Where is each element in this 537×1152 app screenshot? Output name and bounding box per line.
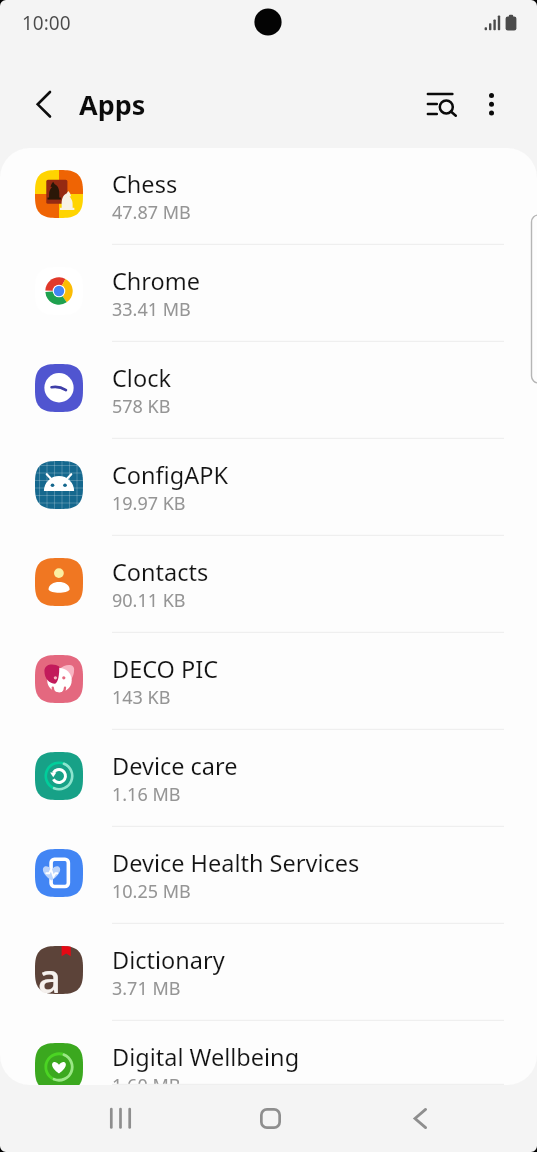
staticText: DECO PIC xyxy=(112,653,219,685)
staticText: 10.25 MB xyxy=(112,879,191,904)
staticText: 3.71 MB xyxy=(112,976,181,1001)
button[interactable]: Clock xyxy=(0,342,537,439)
staticText: 10:00 xyxy=(22,10,71,36)
button[interactable]: a xyxy=(0,924,537,1021)
staticText: 1.16 MB xyxy=(112,782,181,807)
button[interactable]: Digital Wellbeing xyxy=(0,1021,537,1085)
staticText: Device Health Services xyxy=(112,847,360,879)
button[interactable]: DECO PIC xyxy=(0,633,537,730)
button[interactable]: Search xyxy=(419,82,465,128)
staticText: 90.11 KB xyxy=(112,588,186,613)
staticText: Apps xyxy=(79,86,146,123)
staticText: 1.60 MB xyxy=(112,1073,181,1085)
button[interactable]: Recents xyxy=(94,1092,146,1144)
staticText: Device care xyxy=(112,750,238,782)
staticText: Contacts xyxy=(112,556,209,588)
button[interactable]: More options xyxy=(469,82,515,128)
staticText: 578 KB xyxy=(112,394,171,419)
button[interactable]: Device care xyxy=(0,730,537,827)
staticText: 47.87 MB xyxy=(112,200,191,225)
button[interactable]: Contacts xyxy=(0,536,537,633)
staticText: ConfigAPK xyxy=(112,459,228,491)
staticText: 143 KB xyxy=(112,685,171,710)
button[interactable]: Home xyxy=(244,1092,296,1144)
button[interactable]: ConfigAPK xyxy=(0,439,537,536)
staticText: Dictionary xyxy=(112,944,225,976)
staticText: Chess xyxy=(112,168,178,200)
staticText: Clock xyxy=(112,362,171,394)
button[interactable]: Back xyxy=(394,1092,446,1144)
button[interactable]: Chess xyxy=(0,148,537,245)
staticText: 19.97 KB xyxy=(112,491,186,516)
button[interactable]: Navigate up xyxy=(22,86,60,124)
staticText: Chrome xyxy=(112,265,201,297)
staticText: 33.41 MB xyxy=(112,297,191,322)
button[interactable]: Chrome xyxy=(0,245,537,342)
staticText: Digital Wellbeing xyxy=(112,1041,300,1073)
staticText: a xyxy=(38,950,61,998)
button[interactable]: Device Health Services xyxy=(0,827,537,924)
